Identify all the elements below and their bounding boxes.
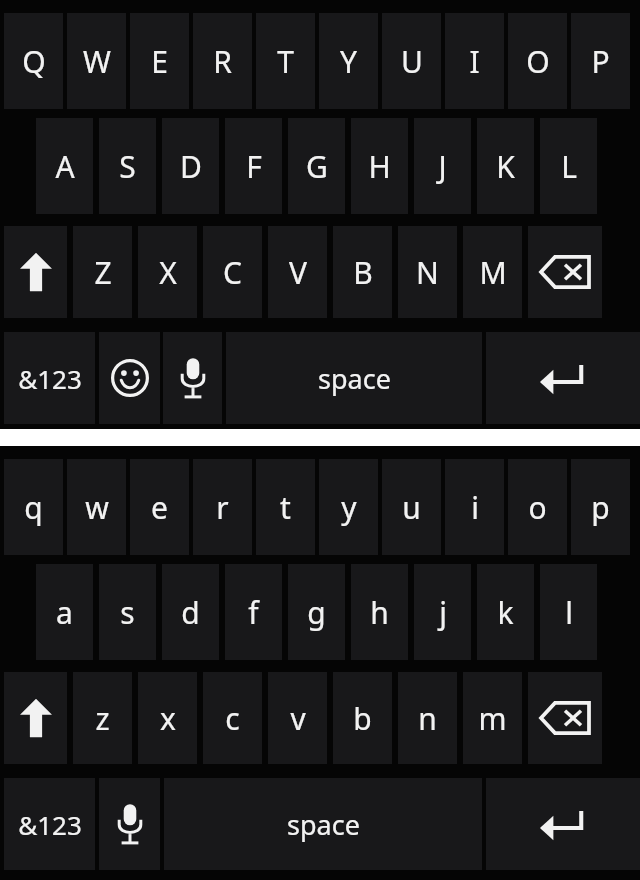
staticText: G	[306, 146, 328, 187]
button[interactable]: U	[382, 13, 441, 109]
button[interactable]: R	[193, 13, 252, 109]
button[interactable]: Voice input	[163, 332, 222, 424]
button[interactable]: Emoji	[99, 332, 160, 424]
button[interactable]: space	[226, 332, 482, 424]
staticText: I	[469, 41, 480, 82]
staticText: space	[287, 806, 360, 843]
button[interactable]: H	[351, 118, 408, 214]
button[interactable]: K	[477, 118, 534, 214]
staticText: K	[496, 146, 515, 187]
button[interactable]: v	[268, 672, 327, 764]
button[interactable]: Backspace	[528, 226, 602, 318]
button[interactable]: V	[268, 226, 327, 318]
button[interactable]: E	[130, 13, 189, 109]
button[interactable]: Q	[4, 13, 63, 109]
button[interactable]: F	[225, 118, 282, 214]
button[interactable]: m	[463, 672, 522, 764]
button[interactable]: Shift	[4, 226, 67, 318]
button[interactable]: D	[162, 118, 219, 214]
staticText: Q	[22, 41, 46, 82]
button[interactable]: d	[162, 564, 219, 660]
staticText: f	[248, 592, 259, 633]
button[interactable]: z	[73, 672, 132, 764]
staticText: Z	[94, 252, 112, 293]
staticText: &123	[18, 807, 82, 842]
button[interactable]: o	[508, 459, 567, 555]
button[interactable]: l	[540, 564, 597, 660]
button[interactable]: B	[333, 226, 392, 318]
button[interactable]: e	[130, 459, 189, 555]
button[interactable]: W	[67, 13, 126, 109]
button[interactable]: Enter	[486, 778, 640, 870]
button[interactable]: S	[99, 118, 156, 214]
staticText: V	[289, 252, 307, 293]
button[interactable]: space	[164, 778, 482, 870]
button[interactable]: Shift	[4, 672, 67, 764]
button[interactable]: M	[463, 226, 522, 318]
button[interactable]: C	[203, 226, 262, 318]
button[interactable]: y	[319, 459, 378, 555]
staticText: D	[180, 146, 202, 187]
staticText: L	[561, 146, 577, 187]
button[interactable]: A	[36, 118, 93, 214]
button[interactable]: c	[203, 672, 262, 764]
button[interactable]: &123	[4, 778, 95, 870]
button[interactable]: q	[4, 459, 63, 555]
staticText: g	[307, 592, 326, 633]
button[interactable]: p	[571, 459, 630, 555]
button[interactable]: &123	[4, 332, 95, 424]
staticText: v	[290, 698, 306, 739]
staticText: t	[280, 487, 291, 528]
button[interactable]: Y	[319, 13, 378, 109]
button[interactable]: O	[508, 13, 567, 109]
button[interactable]: f	[225, 564, 282, 660]
button[interactable]: Enter	[486, 332, 640, 424]
staticText: C	[223, 252, 242, 293]
staticText: &123	[18, 361, 82, 396]
button[interactable]: h	[351, 564, 408, 660]
button[interactable]: L	[540, 118, 597, 214]
button[interactable]: P	[571, 13, 630, 109]
button[interactable]: g	[288, 564, 345, 660]
button[interactable]: b	[333, 672, 392, 764]
button[interactable]: N	[398, 226, 457, 318]
button[interactable]: w	[67, 459, 126, 555]
button[interactable]: a	[36, 564, 93, 660]
staticText: r	[216, 487, 229, 528]
staticText: O	[526, 41, 550, 82]
staticText: F	[246, 146, 262, 187]
staticText: E	[151, 41, 168, 82]
button[interactable]: k	[477, 564, 534, 660]
button[interactable]: t	[256, 459, 315, 555]
button[interactable]: I	[445, 13, 504, 109]
staticText: U	[401, 41, 423, 82]
button[interactable]: x	[138, 672, 197, 764]
staticText: p	[591, 487, 610, 528]
staticText: e	[151, 487, 168, 528]
button[interactable]: Voice input	[99, 778, 160, 870]
button[interactable]: r	[193, 459, 252, 555]
button[interactable]: J	[414, 118, 471, 214]
button[interactable]: Backspace	[528, 672, 602, 764]
button[interactable]: X	[138, 226, 197, 318]
button[interactable]: G	[288, 118, 345, 214]
staticText: T	[277, 41, 294, 82]
button[interactable]: Z	[73, 226, 132, 318]
staticText: m	[478, 698, 507, 739]
staticText: space	[318, 360, 391, 397]
button[interactable]: s	[99, 564, 156, 660]
staticText: y	[341, 487, 357, 528]
staticText: W	[83, 41, 111, 82]
staticText: J	[438, 146, 447, 187]
staticText: k	[497, 592, 514, 633]
staticText: d	[181, 592, 200, 633]
staticText: o	[528, 487, 547, 528]
staticText: n	[418, 698, 437, 739]
button[interactable]: j	[414, 564, 471, 660]
button[interactable]: i	[445, 459, 504, 555]
staticText: s	[120, 592, 135, 633]
button[interactable]: n	[398, 672, 457, 764]
button[interactable]: T	[256, 13, 315, 109]
staticText: h	[370, 592, 389, 633]
button[interactable]: u	[382, 459, 441, 555]
